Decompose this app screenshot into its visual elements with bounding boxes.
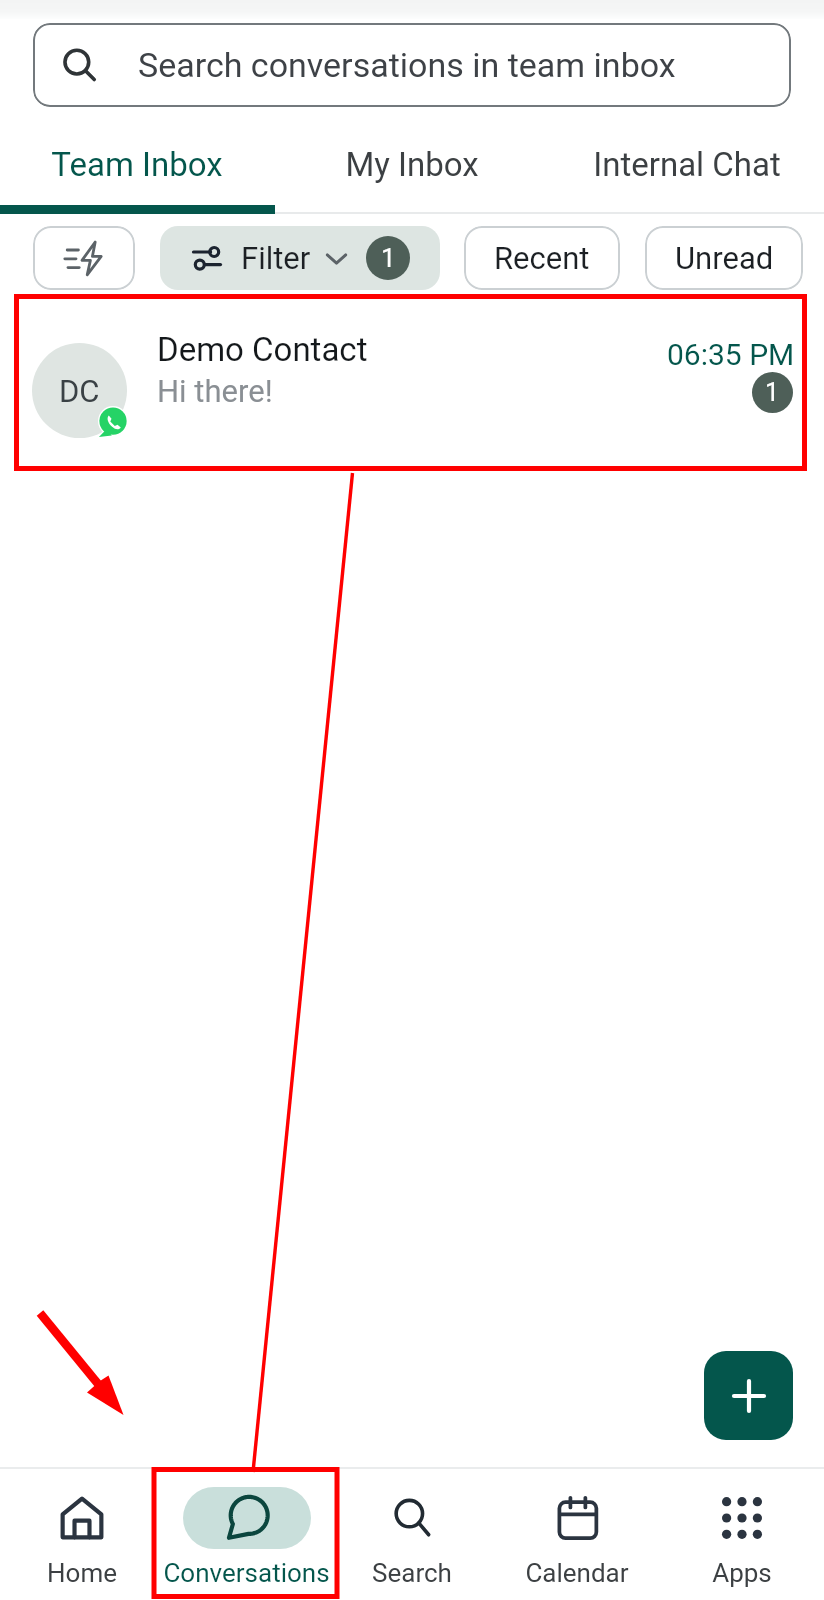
button[interactable]: Internal Chat xyxy=(549,113,824,216)
button[interactable]: Apps xyxy=(659,1469,824,1600)
button[interactable]: Recent xyxy=(464,226,620,290)
staticText: 06:35 PM xyxy=(667,337,795,372)
staticText: Demo Contact xyxy=(157,330,368,369)
staticText: Search conversations in team inbox xyxy=(138,45,676,85)
staticText: Recent xyxy=(494,240,590,276)
staticText: Hi there! xyxy=(157,373,273,409)
staticText: DC xyxy=(59,373,100,409)
button[interactable]: New conversation xyxy=(704,1351,793,1440)
staticText: My Inbox xyxy=(345,145,479,184)
button[interactable]: My Inbox xyxy=(274,113,549,216)
button[interactable]: Unread xyxy=(645,226,803,290)
button[interactable]: Quick actions xyxy=(33,226,135,290)
staticText: Apps xyxy=(712,1558,772,1588)
staticText: Conversations xyxy=(163,1558,330,1588)
staticText: 1 xyxy=(765,378,780,407)
button[interactable]: Home xyxy=(0,1469,164,1600)
button[interactable]: Search xyxy=(329,1469,494,1600)
button[interactable]: Calendar xyxy=(494,1469,659,1600)
staticText: Unread xyxy=(675,240,774,276)
button[interactable]: Team Inbox xyxy=(0,113,274,216)
staticText: Calendar xyxy=(525,1558,629,1588)
button[interactable]: Search conversations in team inbox xyxy=(33,23,791,107)
staticText: Filter xyxy=(241,240,311,276)
staticText: Team Inbox xyxy=(51,145,223,184)
button[interactable]: DC xyxy=(0,295,824,463)
staticText: Internal Chat xyxy=(593,145,781,184)
staticText: Search xyxy=(372,1558,452,1588)
button[interactable]: Filter xyxy=(160,226,440,290)
staticText: 1 xyxy=(381,243,396,273)
staticText: Home xyxy=(47,1558,117,1588)
button[interactable]: Conversations xyxy=(164,1469,329,1600)
